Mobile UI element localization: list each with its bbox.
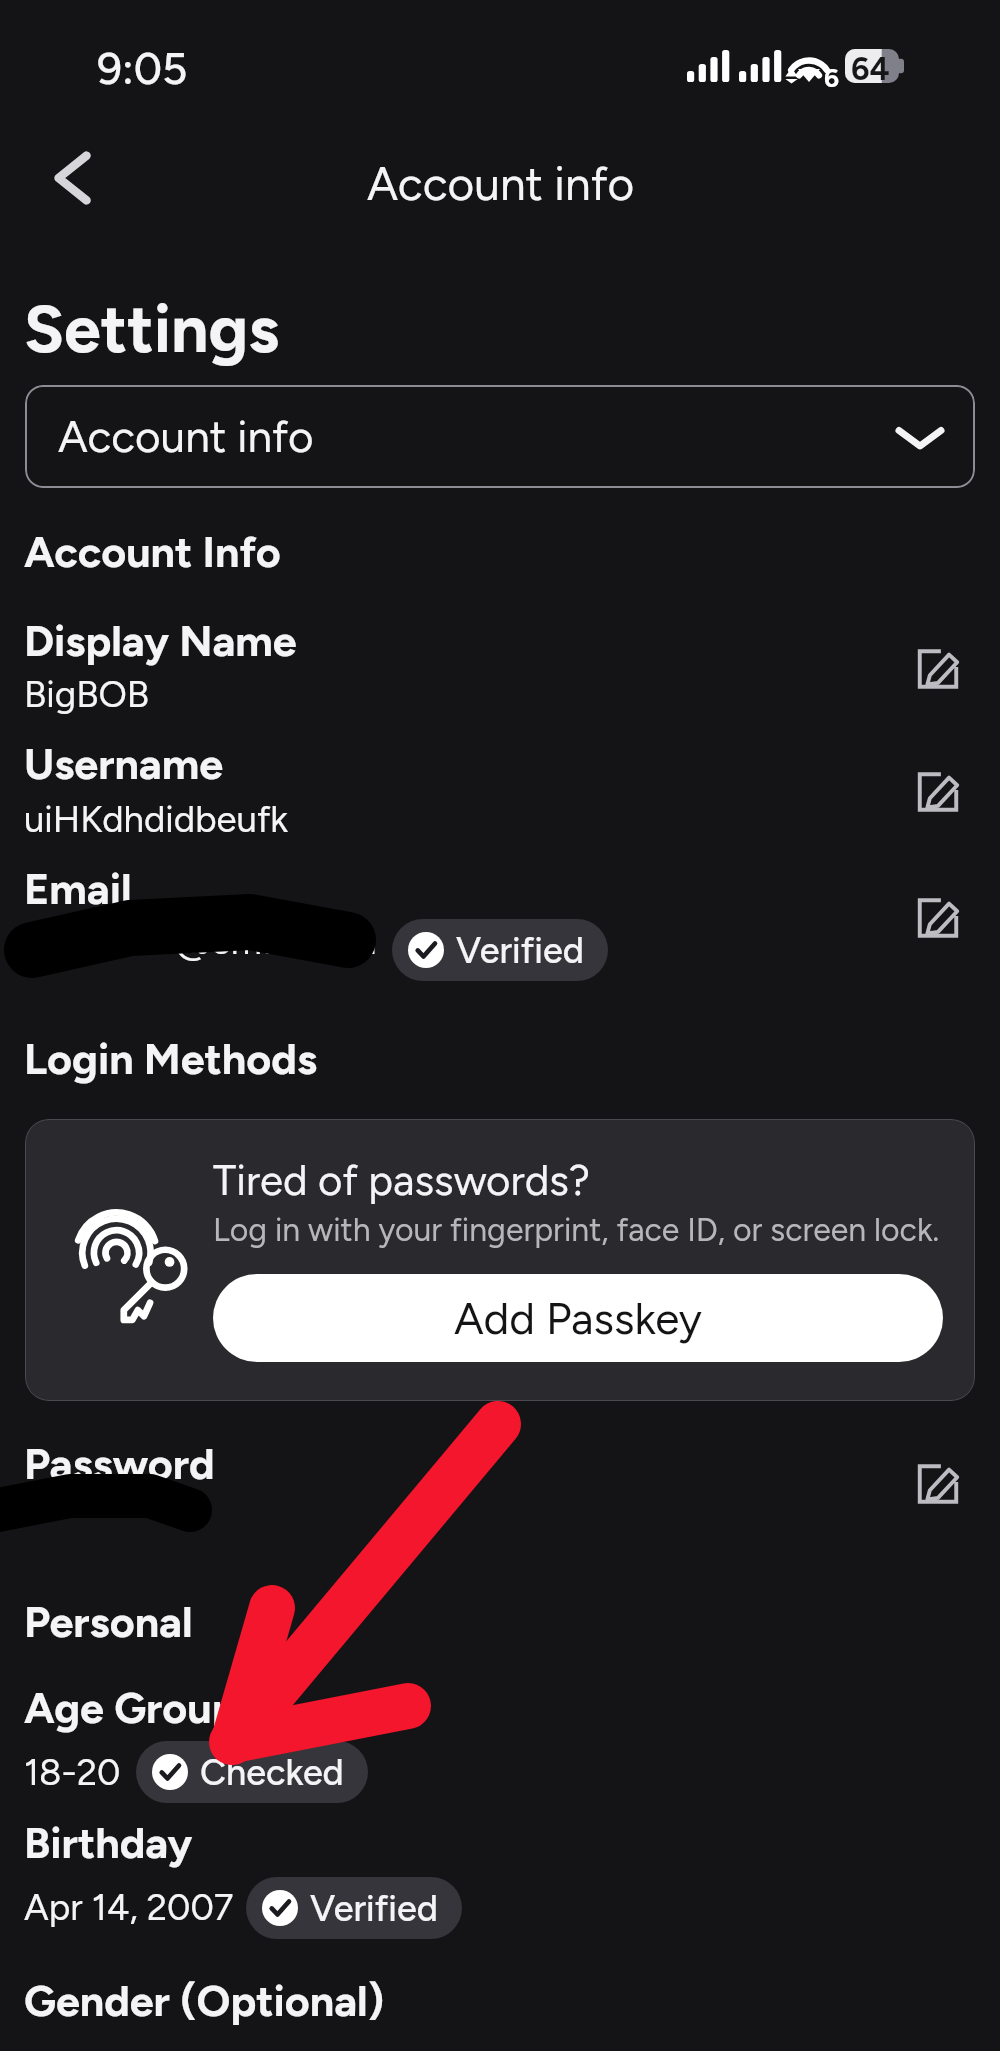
button[interactable]: Add Passkey — [213, 1274, 943, 1362]
staticText: Login Methods — [24, 1033, 317, 1085]
staticText: Account Info — [24, 526, 281, 578]
button[interactable]: Back — [44, 150, 100, 206]
button[interactable]: Edit — [914, 894, 962, 942]
staticText: Verified — [456, 929, 584, 972]
staticText: Username — [24, 738, 224, 790]
button[interactable]: Account info — [25, 385, 975, 488]
staticText: Verified — [310, 1887, 438, 1930]
staticText: Email — [24, 863, 132, 915]
staticText: Add Passkey — [454, 1292, 702, 1345]
staticText: 18-20 — [24, 1750, 121, 1794]
staticText: Account info — [58, 410, 314, 463]
staticText: Account info — [367, 156, 635, 211]
button[interactable]: Verified — [246, 1877, 462, 1939]
staticText: BigBOB — [24, 672, 150, 716]
staticText: Age Group — [24, 1682, 238, 1734]
staticText: Apr 14, 2007 — [24, 1885, 234, 1929]
staticText: Settings — [24, 289, 279, 368]
staticText: Checked — [200, 1751, 344, 1794]
staticText: Personal — [24, 1596, 193, 1648]
staticText: Gender (Optional) — [24, 1975, 385, 2027]
staticText: Log in with your fingerprint, face ID, o… — [213, 1211, 940, 1249]
button[interactable]: Edit — [914, 645, 962, 693]
button[interactable]: Edit — [914, 768, 962, 816]
button[interactable]: Verified — [392, 919, 608, 981]
staticText: uiHKdhdidbeufk — [24, 797, 289, 841]
button[interactable]: Edit — [914, 1460, 962, 1508]
staticText: Tired of passwords? — [213, 1155, 590, 1205]
button[interactable]: Checked — [136, 1741, 368, 1803]
staticText: Display Name — [24, 615, 297, 667]
staticText: 64 — [851, 50, 890, 88]
staticText: Password — [24, 1438, 215, 1490]
staticText: Birthday — [24, 1817, 193, 1869]
staticText: 6 — [824, 62, 840, 93]
staticText: someone@email.com — [24, 919, 377, 963]
staticText: 9:05 — [97, 42, 188, 95]
